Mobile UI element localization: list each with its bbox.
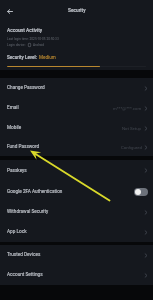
button[interactable]: App Lock <box>0 222 153 242</box>
button[interactable]: Trusted Devices <box>0 245 153 265</box>
button[interactable]: Passkeys <box>0 160 153 181</box>
staticText: Trusted Devices <box>7 252 41 258</box>
staticText: Login device: <box>7 43 26 47</box>
staticText: Account Settings <box>7 272 43 278</box>
staticText: m***@***.com <box>113 106 142 111</box>
staticText: Security Level: <box>7 55 37 60</box>
button[interactable]: Google 2FA Authentication <box>0 181 153 202</box>
staticText: App Lock <box>7 229 27 235</box>
staticText: Last login time: 2025-10-05 20:50:33 <box>7 37 59 41</box>
button[interactable]: Change Password <box>0 78 153 98</box>
staticText: Google 2FA Authentication <box>7 189 63 195</box>
staticText: Android <box>33 43 45 47</box>
staticText: Passkeys <box>7 168 27 174</box>
staticText: Configured <box>121 145 142 150</box>
staticText: Account Activity <box>7 28 43 34</box>
button[interactable]: Back <box>0 1 20 21</box>
staticText: Security <box>68 8 86 14</box>
staticText: Withdrawal Security <box>7 209 49 215</box>
button[interactable]: Email <box>0 98 153 118</box>
button[interactable]: Mobile <box>0 118 153 138</box>
staticText: Medium <box>39 55 56 60</box>
button[interactable]: Google 2FA toggle <box>134 188 148 196</box>
button[interactable]: Fund Password <box>0 138 153 156</box>
button[interactable]: Account Settings <box>0 265 153 285</box>
button[interactable]: Withdrawal Security <box>0 202 153 222</box>
staticText: Not Setup <box>122 126 142 131</box>
staticText: Email <box>7 105 19 111</box>
staticText: Fund Password <box>7 144 40 150</box>
staticText: Change Password <box>7 85 45 91</box>
staticText: Mobile <box>7 125 22 131</box>
